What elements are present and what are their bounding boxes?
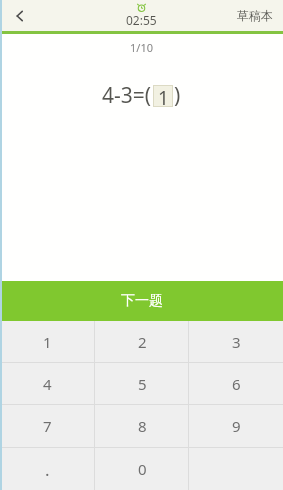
staticText: 7 — [43, 416, 52, 436]
button[interactable]: 草稿本 — [227, 0, 283, 31]
button[interactable]: 0 — [95, 448, 189, 490]
button[interactable]: 6 — [189, 363, 283, 404]
staticText: 下一题 — [121, 292, 163, 310]
staticText: 4 — [43, 374, 52, 394]
button[interactable]: 9 — [189, 405, 283, 447]
staticText: 2 — [138, 332, 147, 352]
button[interactable]: 4 — [0, 363, 95, 404]
staticText: 4-3=( — [102, 81, 152, 110]
button[interactable]: 1 — [153, 85, 173, 107]
staticText: 1/10 — [0, 40, 283, 55]
staticText: 9 — [232, 416, 241, 436]
staticText: 6 — [232, 374, 241, 394]
button[interactable]: 2 — [95, 321, 189, 362]
button[interactable]: 8 — [95, 405, 189, 447]
button[interactable]: 3 — [189, 321, 283, 362]
staticText: 草稿本 — [237, 8, 273, 23]
staticText: 1 — [43, 332, 52, 352]
button[interactable]: . — [0, 448, 95, 490]
staticText: 5 — [138, 374, 147, 394]
button[interactable]: 5 — [95, 363, 189, 404]
staticText: 0 — [138, 459, 147, 479]
staticText: 3 — [232, 332, 241, 352]
button[interactable]: 7 — [0, 405, 95, 447]
button[interactable]: 下一题 — [0, 281, 283, 321]
button[interactable]: 1 — [0, 321, 95, 362]
staticText: ) — [174, 81, 181, 110]
staticText: 02:55 — [126, 12, 157, 28]
staticText: . — [45, 458, 50, 481]
staticText: 1 — [158, 85, 169, 107]
staticText: 8 — [138, 416, 147, 436]
button[interactable]: Back — [0, 0, 40, 31]
